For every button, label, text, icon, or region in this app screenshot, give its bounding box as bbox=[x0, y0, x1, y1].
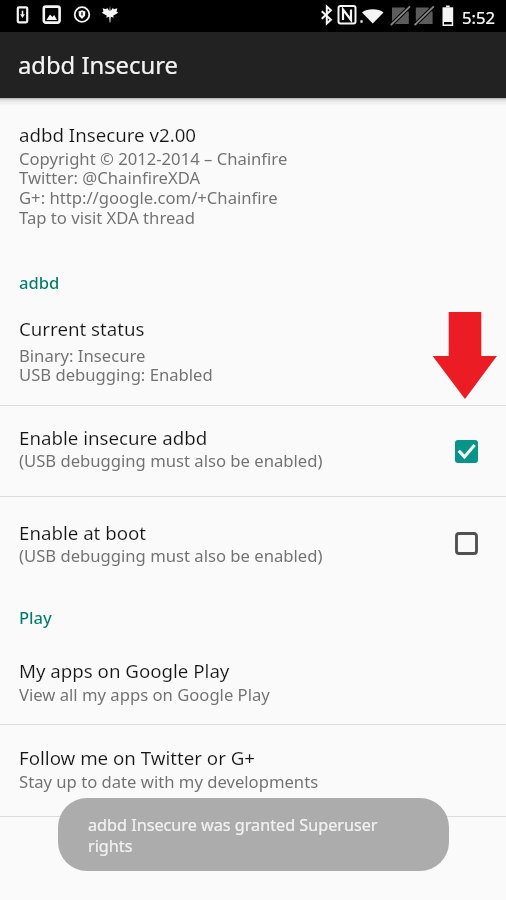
button[interactable]: adbd Insecure v2.00 bbox=[0, 106, 506, 238]
button[interactable]: Enable at boot bbox=[0, 514, 506, 586]
staticText: Follow me on Twitter or G+ bbox=[19, 745, 256, 770]
staticText: (USB debugging must also be enabled) bbox=[19, 449, 323, 472]
staticText: adbd bbox=[19, 271, 60, 294]
staticText: (USB debugging must also be enabled) bbox=[19, 544, 323, 567]
button[interactable]: Follow me on Twitter or G+ bbox=[0, 726, 506, 816]
staticText: adbd Insecure was granted Superuser righ… bbox=[88, 814, 415, 856]
staticText: My apps on Google Play bbox=[19, 658, 230, 683]
button[interactable]: My apps on Google Play bbox=[0, 639, 506, 724]
staticText: View all my apps on Google Play bbox=[19, 683, 270, 706]
staticText: Stay up to date with my developments bbox=[19, 770, 319, 793]
staticText: Current status bbox=[19, 316, 145, 341]
staticText: Binary: Insecure USB debugging: Enabled bbox=[19, 344, 213, 386]
staticText: adbd Insecure v2.00 bbox=[19, 122, 197, 147]
staticText: Play bbox=[19, 606, 52, 629]
staticText: Enable insecure adbd bbox=[19, 425, 208, 450]
staticText: Copyright © 2012-2014 – Chainfire Twitte… bbox=[19, 147, 288, 229]
staticText: 5:52 bbox=[462, 6, 495, 29]
button[interactable]: Current status bbox=[0, 300, 506, 405]
staticText: Enable at boot bbox=[19, 520, 147, 545]
button[interactable]: Enable insecure adbd bbox=[0, 419, 506, 494]
staticText: adbd Insecure bbox=[18, 49, 178, 81]
